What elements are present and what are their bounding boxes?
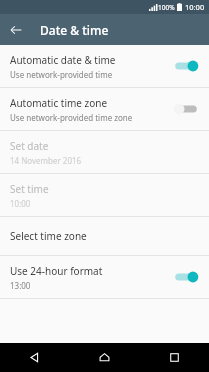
staticText: Use network-provided time (10, 69, 113, 80)
staticText: Select time zone (10, 229, 87, 243)
staticText: Automatic date & time (10, 53, 116, 67)
button: Set date (0, 131, 209, 173)
staticText: Set date (10, 139, 49, 153)
staticText: 13:00 (10, 280, 31, 291)
staticText: Use network-provided time zone (10, 112, 133, 123)
button[interactable]: Use 24-hour format (0, 256, 209, 298)
staticText: 10:00 (10, 198, 31, 209)
button[interactable]: Recent apps (139, 343, 209, 372)
staticText: Date & time (40, 22, 109, 38)
staticText: 100% (158, 3, 175, 12)
button: Set time (0, 174, 209, 216)
staticText: Use 24-hour format (10, 264, 103, 278)
button[interactable]: Select time zone (0, 217, 209, 255)
button[interactable]: Automatic time zone (0, 88, 209, 130)
staticText: Set time (10, 182, 49, 196)
button[interactable]: Off (171, 99, 201, 119)
button[interactable]: On (171, 267, 201, 287)
staticText: 14 November 2016 (10, 155, 82, 166)
button[interactable]: Home (69, 343, 139, 372)
button[interactable]: On (171, 56, 201, 76)
button[interactable]: Automatic date & time (0, 45, 209, 87)
staticText: Automatic time zone (10, 96, 108, 110)
staticText: 10:00 (185, 2, 205, 12)
button[interactable]: Back (4, 18, 28, 42)
button[interactable]: Back (0, 343, 69, 372)
